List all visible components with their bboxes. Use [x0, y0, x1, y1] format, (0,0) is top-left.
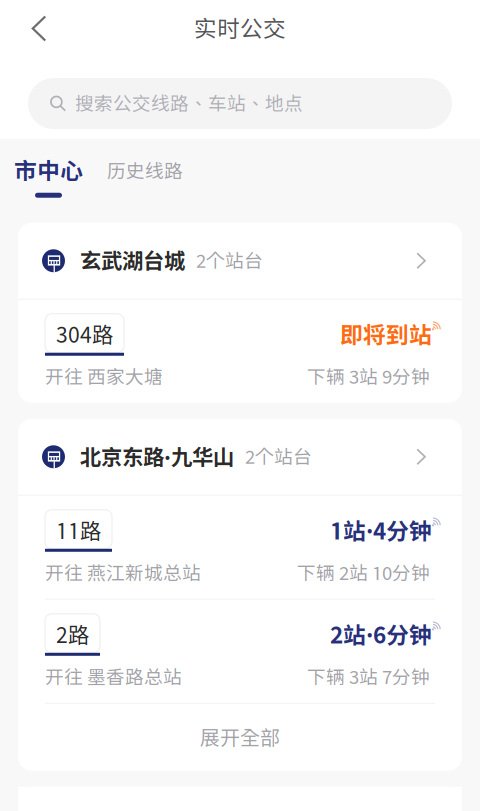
staticText: 2站·6分钟 — [330, 621, 432, 648]
staticText: 展开全部 — [200, 725, 280, 749]
staticText: 即将到站 — [340, 321, 432, 348]
button[interactable]: 北京东路·九华山 — [18, 419, 462, 495]
staticText: 市中心 — [14, 157, 83, 184]
staticText: 玄武湖台城 — [80, 248, 185, 273]
staticText: 11路 — [56, 518, 101, 543]
staticText: 开往 墨香路总站 — [45, 666, 182, 688]
staticText: 搜索公交线路、车站、地点 — [75, 92, 303, 114]
staticText: 下辆 2站 10分钟 — [297, 562, 430, 584]
staticText: 2个站台 — [245, 446, 312, 468]
staticText: 下辆 3站 7分钟 — [307, 666, 430, 688]
staticText: 开往 西家大塘 — [45, 366, 163, 388]
staticText: 开往 燕江新城总站 — [45, 562, 201, 584]
button[interactable]: Back — [16, 5, 62, 51]
staticText: 下辆 3站 9分钟 — [307, 366, 430, 388]
staticText: 历史线路 — [107, 160, 183, 182]
button[interactable]: 历史线路 — [107, 157, 183, 182]
button[interactable]: 2路 — [18, 600, 462, 703]
button[interactable]: 展开全部 — [18, 704, 462, 771]
staticText: 2路 — [56, 622, 89, 647]
staticText: 北京东路·九华山 — [80, 444, 234, 469]
button[interactable]: 玄武湖台城 — [18, 223, 462, 299]
staticText: 实时公交 — [194, 15, 286, 42]
button[interactable]: 11路 — [18, 496, 462, 599]
button[interactable]: 市中心 — [14, 157, 83, 198]
button[interactable]: 搜索公交线路、车站、地点 — [28, 78, 452, 129]
button[interactable]: 304路 — [18, 300, 462, 403]
staticText: 2个站台 — [196, 250, 263, 272]
staticText: 1站·4分钟 — [330, 517, 432, 544]
staticText: 304路 — [56, 322, 113, 347]
